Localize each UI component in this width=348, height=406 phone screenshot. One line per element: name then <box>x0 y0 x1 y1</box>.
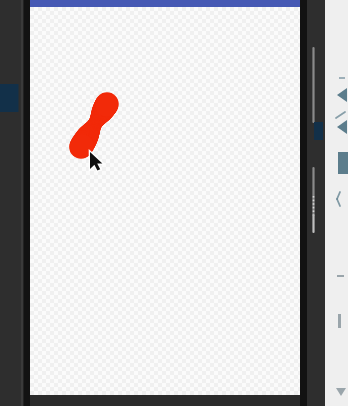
button[interactable]: Drawing canvas <box>0 0 348 406</box>
